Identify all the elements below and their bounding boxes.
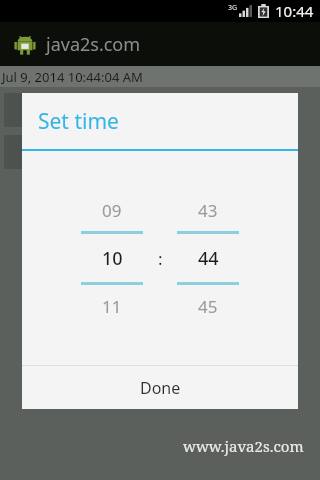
button[interactable]: 43 [173, 189, 243, 231]
staticText: 45 [198, 295, 218, 318]
staticText: 3G [228, 3, 238, 13]
staticText: Jul 9, 2014 10:44:04 AM [2, 68, 143, 86]
button[interactable] [4, 93, 94, 127]
button[interactable] [4, 135, 94, 169]
staticText: 44 [198, 246, 219, 271]
button[interactable]: 09 [77, 189, 147, 231]
button[interactable]: 44 [173, 234, 243, 282]
other: Battery charging [258, 4, 269, 18]
staticText: 10:44 [275, 1, 314, 21]
staticText: Done [140, 377, 181, 399]
staticText: : [158, 247, 163, 270]
staticText: www.java2s.com [183, 436, 304, 456]
staticText: 09 [102, 199, 122, 222]
staticText: java2s.com [46, 32, 141, 57]
staticText: 43 [198, 199, 218, 222]
staticText: 10 [102, 246, 123, 271]
other: App icon [14, 34, 36, 56]
button[interactable]: 45 [173, 285, 243, 327]
button[interactable]: 11 [77, 285, 147, 327]
staticText: Set time [38, 107, 119, 136]
button[interactable]: Done [22, 366, 298, 409]
button[interactable]: 10 [77, 234, 147, 282]
staticText: 11 [102, 295, 122, 318]
